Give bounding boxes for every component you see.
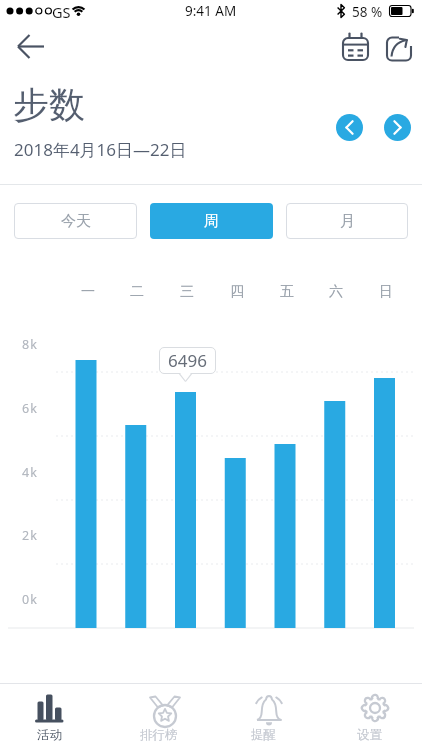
staticText: 步数 (13, 82, 85, 127)
button[interactable]: 设置 (329, 688, 409, 748)
button[interactable]: 排行榜 (119, 688, 199, 748)
staticText: 月 (340, 212, 355, 231)
staticText: 一 (81, 283, 95, 300)
staticText: 二 (130, 283, 144, 300)
button[interactable]: 周 (150, 203, 273, 239)
staticText: 58 % (352, 3, 383, 21)
staticText: 六 (329, 283, 343, 300)
staticText: 日 (379, 283, 393, 300)
button[interactable]: 活动 (9, 688, 89, 748)
button[interactable] (384, 31, 415, 63)
button[interactable]: 提醒 (223, 688, 303, 748)
button[interactable] (336, 114, 363, 141)
staticText: GS (52, 2, 71, 22)
button[interactable]: 今天 (14, 203, 137, 239)
staticText: 9:41 AM (185, 2, 237, 20)
staticText: 4k (22, 464, 38, 481)
staticText: 周 (204, 212, 219, 231)
staticText: 活动 (37, 727, 62, 743)
staticText: 6k (22, 400, 38, 417)
staticText: 2018年4月16日—22日 (14, 138, 187, 161)
staticText: 三 (180, 283, 194, 300)
staticText: 2k (22, 527, 38, 544)
staticText: 四 (230, 283, 244, 300)
staticText: 6496 (168, 349, 207, 372)
button[interactable] (10, 32, 50, 62)
staticText: 设置 (357, 727, 382, 743)
staticText: 排行榜 (140, 727, 178, 743)
staticText: 今天 (61, 212, 91, 231)
staticText: 提醒 (251, 727, 276, 743)
staticText: 0k (22, 591, 38, 608)
button[interactable]: 月 (286, 203, 408, 239)
staticText: 五 (280, 283, 294, 300)
button[interactable] (384, 114, 411, 141)
button[interactable] (340, 31, 371, 63)
staticText: 8k (22, 336, 38, 353)
